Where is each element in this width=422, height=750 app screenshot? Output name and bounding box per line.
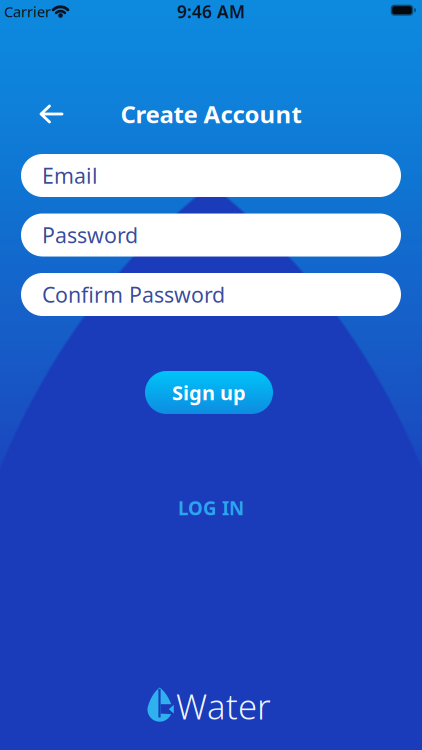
staticText: Water — [176, 683, 271, 729]
staticText: Password — [42, 221, 138, 249]
staticText: Email — [42, 161, 98, 190]
staticText: Confirm Password — [42, 280, 225, 309]
button[interactable]: LOG IN — [121, 493, 301, 523]
staticText: 9:46 AM — [177, 0, 245, 23]
staticText: Sign up — [172, 379, 246, 406]
staticText: Create Account — [120, 98, 301, 130]
staticText: LOG IN — [178, 496, 244, 520]
button[interactable]: Sign up — [145, 371, 273, 414]
button[interactable]: Back — [29, 97, 73, 131]
button[interactable]: Password — [21, 213, 401, 256]
button[interactable]: Email — [21, 154, 401, 197]
button[interactable]: Confirm Password — [21, 273, 401, 316]
staticText: Carrier — [4, 2, 51, 21]
